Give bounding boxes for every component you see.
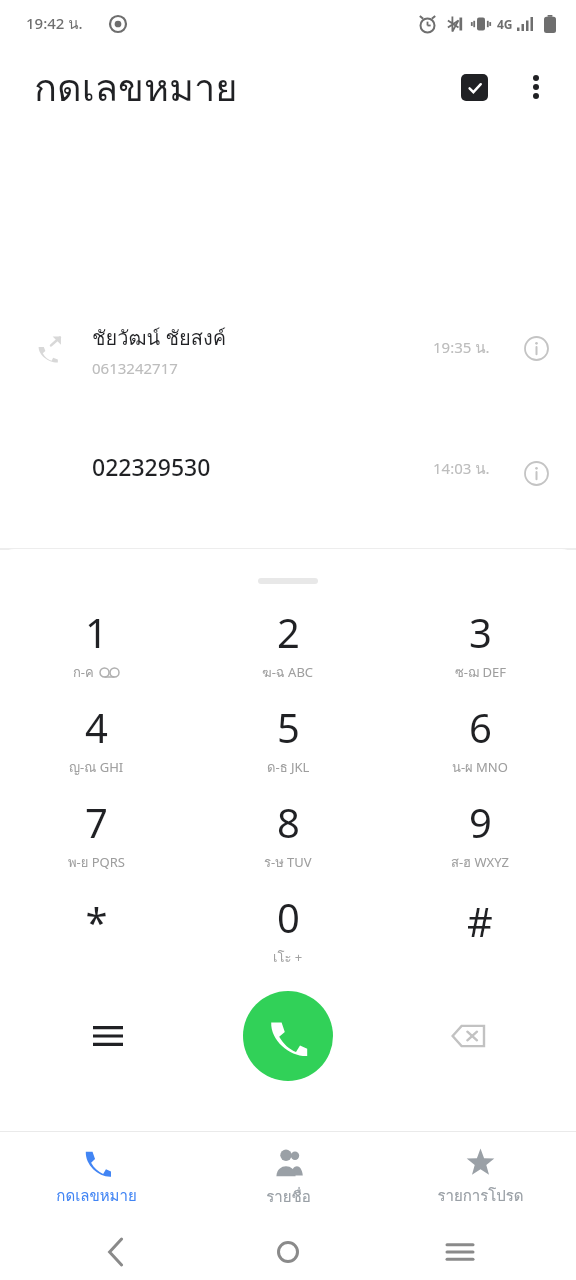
button[interactable]: 5 xyxy=(192,691,384,786)
staticText: ก-ค xyxy=(73,662,94,683)
staticText: # xyxy=(467,894,493,948)
button[interactable]: 1 xyxy=(0,596,192,691)
button[interactable]: Dial options xyxy=(80,1008,136,1064)
button[interactable]: Home xyxy=(268,1232,308,1272)
staticText: กดเลขหมาย xyxy=(34,57,238,117)
staticText: 8 xyxy=(277,795,300,849)
staticText: กดเลขหมาย xyxy=(56,1184,137,1208)
staticText: ชัยวัฒน์ ชัยสงค์ xyxy=(92,322,227,354)
button[interactable]: Recents xyxy=(440,1232,480,1272)
button[interactable]: * xyxy=(0,881,192,976)
staticText: 022329530 xyxy=(92,451,211,482)
staticText: 9 xyxy=(469,795,492,849)
staticText: รายการโปรด xyxy=(437,1184,524,1208)
button[interactable]: รายชื่อ xyxy=(192,1132,384,1224)
button[interactable]: 4 xyxy=(0,691,192,786)
button[interactable]: 2 xyxy=(192,596,384,691)
button[interactable]: 9 xyxy=(384,786,576,881)
button[interactable]: Backspace xyxy=(440,1008,496,1064)
staticText: 19:35 น. xyxy=(433,336,490,360)
staticText: 0613242717 xyxy=(92,358,178,378)
button[interactable]: Call xyxy=(243,991,333,1081)
button[interactable]: 8 xyxy=(192,786,384,881)
button[interactable]: Call details xyxy=(514,326,558,370)
staticText: 5 xyxy=(277,700,300,754)
button[interactable]: 6 xyxy=(384,691,576,786)
button[interactable]: รายการโปรด xyxy=(384,1132,576,1224)
button[interactable]: 3 xyxy=(384,596,576,691)
staticText: ด-ธ JKL xyxy=(267,757,310,778)
button[interactable]: กดเลขหมาย xyxy=(0,1132,192,1224)
staticText: 14:03 น. xyxy=(433,457,490,481)
button[interactable]: Back xyxy=(96,1232,136,1272)
button[interactable]: Call details xyxy=(514,451,558,495)
staticText: เโะ + xyxy=(273,947,303,968)
staticText: พ-ย PQRS xyxy=(68,852,125,873)
staticText: 7 xyxy=(85,795,108,849)
staticText: ญ-ณ GHI xyxy=(69,757,124,778)
staticText: 6 xyxy=(469,700,492,754)
staticText: 1 xyxy=(85,605,108,659)
button[interactable]: 0 xyxy=(192,881,384,976)
staticText: 3 xyxy=(469,605,492,659)
staticText: ฆ-ฉ ABC xyxy=(262,662,314,683)
button[interactable]: 7 xyxy=(0,786,192,881)
button[interactable]: More options xyxy=(512,63,560,111)
staticText: ส-ฮ WXYZ xyxy=(451,852,509,873)
button[interactable]: 022329530 xyxy=(0,451,576,497)
staticText: น-ผ MNO xyxy=(452,757,508,778)
staticText: 0 xyxy=(277,890,300,944)
staticText: 4G xyxy=(497,16,513,32)
staticText: 19:42 น. xyxy=(26,12,83,36)
button[interactable]: ชัยวัฒน์ ชัยสงค์ xyxy=(0,322,576,388)
staticText: รายชื่อ xyxy=(266,1185,311,1209)
staticText: 4 xyxy=(85,700,108,754)
staticText: * xyxy=(85,894,108,948)
staticText: ซ-ฌ DEF xyxy=(455,662,506,683)
staticText: ร-ษ TUV xyxy=(264,852,312,873)
button[interactable]: # xyxy=(384,881,576,976)
staticText: 2 xyxy=(277,605,300,659)
button[interactable]: Select xyxy=(450,63,498,111)
